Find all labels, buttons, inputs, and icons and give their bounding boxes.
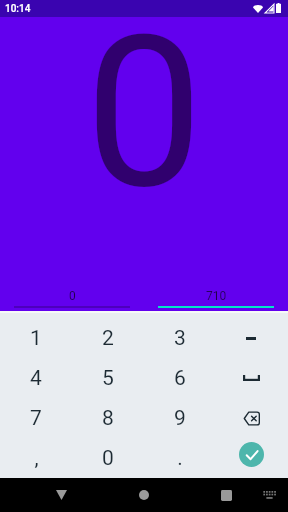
button[interactable]: Home bbox=[117, 478, 171, 512]
button[interactable]: 4 bbox=[0, 358, 72, 398]
button[interactable]: 1 bbox=[0, 318, 72, 358]
staticText: 3 bbox=[174, 326, 186, 351]
button[interactable]: 0 bbox=[0, 283, 144, 311]
button[interactable]: Switch keyboard bbox=[252, 478, 286, 512]
button[interactable]: 9 bbox=[144, 398, 216, 438]
staticText: 2 bbox=[102, 326, 114, 351]
staticText: 5 bbox=[102, 366, 114, 391]
button[interactable]: Recents bbox=[199, 478, 253, 512]
button[interactable]: Back bbox=[34, 478, 88, 512]
staticText: 8 bbox=[102, 406, 114, 431]
staticText: 1 bbox=[30, 326, 42, 351]
button[interactable]: 2 bbox=[72, 318, 144, 358]
button[interactable]: 7 bbox=[0, 398, 72, 438]
button[interactable]: 3 bbox=[144, 318, 216, 358]
button[interactable]: , bbox=[0, 438, 72, 478]
button[interactable]: Minus bbox=[216, 318, 288, 358]
button[interactable]: . bbox=[144, 438, 216, 478]
button[interactable]: Backspace bbox=[216, 398, 288, 438]
staticText: 6 bbox=[174, 366, 186, 391]
button[interactable]: 710 bbox=[144, 283, 288, 311]
staticText: 9 bbox=[174, 406, 186, 431]
staticText: 0 bbox=[85, 0, 204, 236]
button[interactable]: 5 bbox=[72, 358, 144, 398]
staticText: 4 bbox=[30, 366, 42, 391]
staticText: 710 bbox=[206, 289, 227, 303]
button[interactable]: 0 bbox=[72, 438, 144, 478]
staticText: 7 bbox=[30, 406, 42, 431]
button[interactable]: 8 bbox=[72, 398, 144, 438]
staticText: , bbox=[34, 446, 39, 471]
button[interactable]: Space bbox=[216, 358, 288, 398]
button[interactable]: Confirm bbox=[216, 438, 288, 478]
staticText: 0 bbox=[102, 446, 114, 471]
button[interactable]: 6 bbox=[144, 358, 216, 398]
staticText: 0 bbox=[69, 289, 76, 303]
staticText: . bbox=[177, 446, 183, 471]
staticText: 10:14 bbox=[5, 3, 31, 15]
